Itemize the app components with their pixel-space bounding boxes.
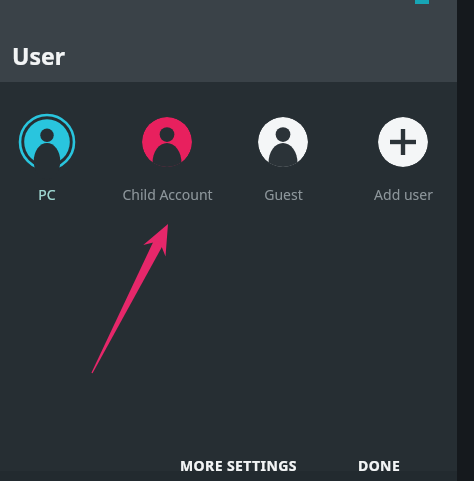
- button[interactable]: DONE: [358, 450, 428, 480]
- staticText: Child Account: [122, 185, 213, 204]
- button[interactable]: Child Account user: [142, 117, 192, 167]
- button[interactable]: PC: [0, 183, 107, 205]
- staticText: Guest: [264, 185, 303, 204]
- button[interactable]: Guest: [223, 183, 343, 205]
- button[interactable]: Guest user: [258, 117, 308, 167]
- staticText: MORE SETTINGS: [180, 456, 297, 475]
- staticText: PC: [38, 185, 56, 204]
- button[interactable]: MORE SETTINGS: [180, 450, 322, 480]
- staticText: Add user: [374, 185, 433, 204]
- button[interactable]: Add user: [343, 183, 463, 205]
- staticText: User: [12, 40, 65, 71]
- button[interactable]: Add user: [378, 117, 428, 167]
- button[interactable]: Child Account: [107, 183, 227, 205]
- button[interactable]: PC user: [18, 113, 76, 171]
- staticText: DONE: [358, 456, 401, 475]
